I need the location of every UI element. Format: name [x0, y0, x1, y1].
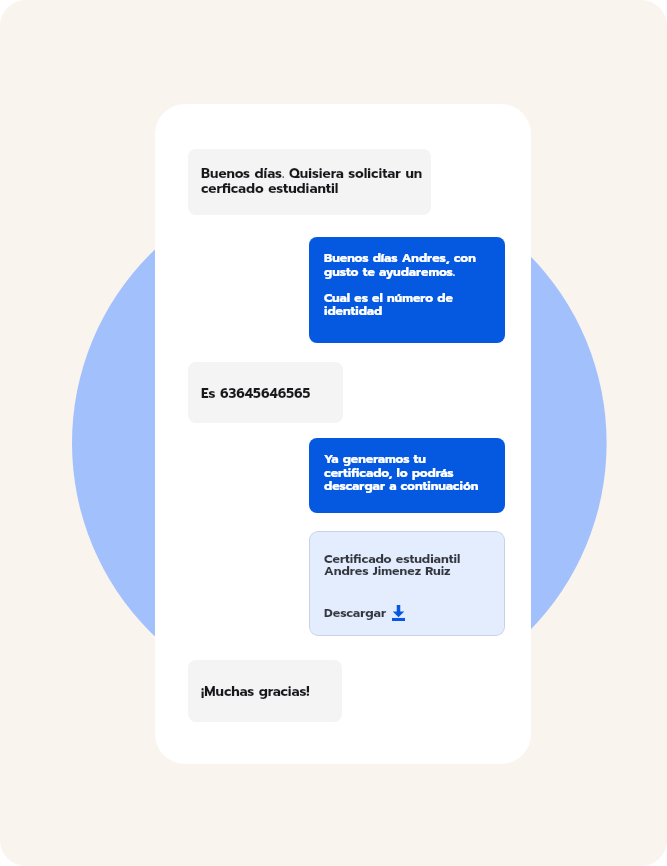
staticText: Buenos días. Quisiera solicitar un cerfi…	[201, 163, 423, 199]
staticText: Es 63645646565	[201, 383, 311, 403]
staticText: ¡Muchas gracias!	[201, 681, 310, 701]
staticText: Certificado estudiantil Andres Jimenez R…	[324, 549, 461, 581]
staticText: Ya generamos tu certificado, lo podrás d…	[324, 450, 479, 495]
button[interactable]: Certificado estudiantil Andres Jimenez R…	[309, 531, 505, 636]
button[interactable]: Es 63645646565	[188, 362, 343, 423]
button[interactable]: Descargar	[324, 603, 405, 622]
button[interactable]: Ya generamos tu certificado, lo podrás d…	[309, 438, 505, 513]
button[interactable]: Buenos días Andres, con gusto te ayudare…	[309, 237, 505, 343]
other: Download	[392, 605, 405, 621]
staticText: Buenos días Andres, con gusto te ayudare…	[324, 249, 476, 320]
button[interactable]: ¡Muchas gracias!	[188, 660, 342, 722]
staticText: Descargar	[324, 603, 387, 622]
button[interactable]: Buenos días. Quisiera solicitar un cerfi…	[188, 149, 431, 215]
